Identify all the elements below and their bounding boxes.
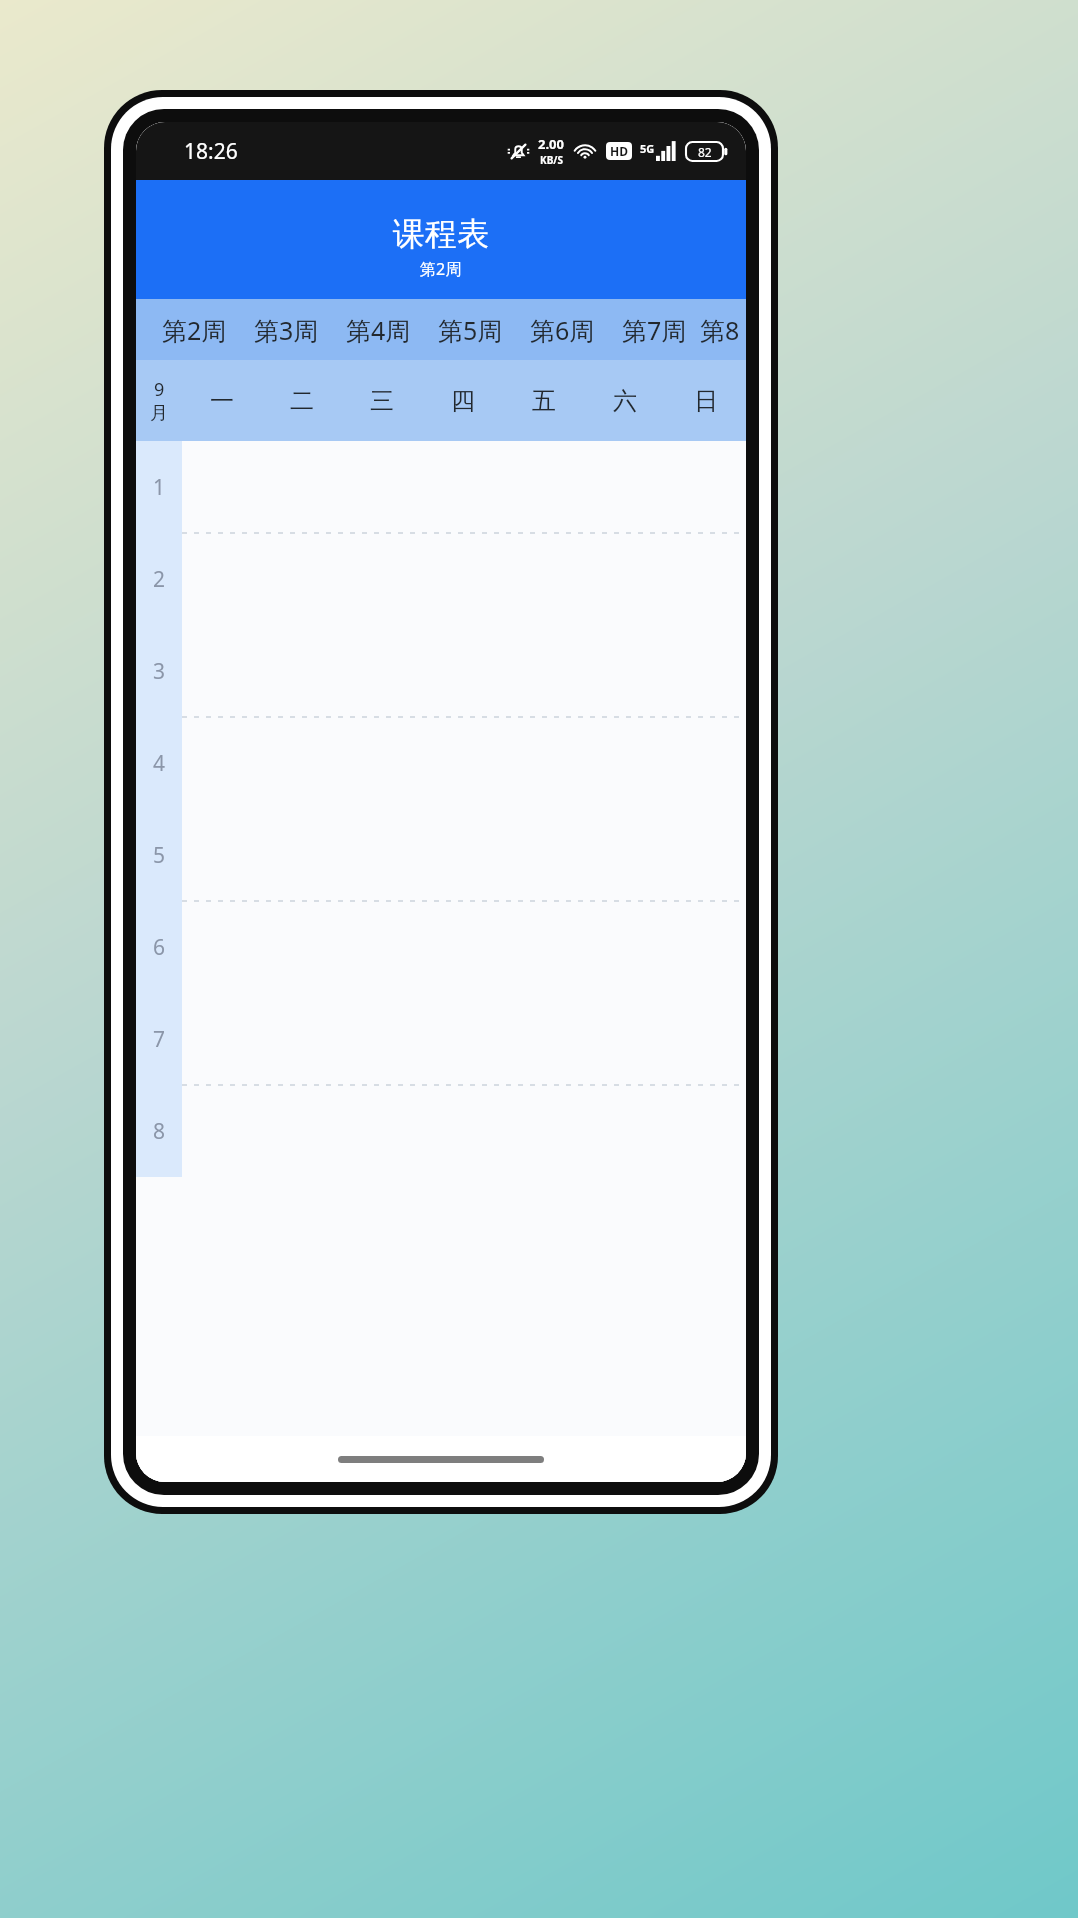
staticText: KB/S (540, 153, 563, 167)
staticText: 2.00 (538, 135, 564, 153)
staticText: 6 (153, 933, 166, 962)
button[interactable]: 第3周 (240, 299, 332, 360)
staticText: 第6周 (530, 313, 595, 347)
staticText: 4 (153, 749, 166, 778)
button[interactable]: Home (338, 1456, 544, 1463)
button[interactable]: 第4周 (332, 299, 424, 360)
staticText: 5G (640, 141, 655, 156)
button[interactable]: 2 (136, 533, 182, 625)
button[interactable]: 第2周 (148, 299, 240, 360)
staticText: 一 (210, 386, 234, 416)
staticText: 18:26 (184, 137, 238, 166)
staticText: HD (610, 143, 628, 159)
button[interactable]: 日 (665, 360, 746, 441)
button[interactable]: 五 (503, 360, 584, 441)
staticText: 5 (153, 841, 166, 870)
staticText: 第2周 (162, 313, 227, 347)
staticText: 月 (150, 402, 168, 425)
button[interactable]: 8 (136, 1085, 182, 1177)
button[interactable]: 第6周 (516, 299, 608, 360)
button[interactable]: 二 (262, 360, 342, 441)
button[interactable]: 4 (136, 717, 182, 809)
staticText: 7 (153, 1025, 166, 1054)
button[interactable]: 3 (136, 625, 182, 717)
staticText: 9 (154, 377, 165, 402)
button[interactable]: 六 (584, 360, 665, 441)
staticText: 三 (370, 386, 394, 416)
button[interactable]: 6 (136, 901, 182, 993)
staticText: 2 (153, 565, 166, 594)
staticText: 82 (698, 144, 712, 160)
staticText: 日 (694, 386, 718, 416)
button[interactable]: 三 (342, 360, 422, 441)
button[interactable]: 一 (182, 360, 262, 441)
staticText: 课程表 (393, 214, 489, 254)
button[interactable]: 5 (136, 809, 182, 901)
staticText: 1 (153, 473, 166, 502)
button[interactable]: 1 (136, 441, 182, 533)
button[interactable]: 第8周 (700, 299, 746, 360)
button[interactable]: 四 (422, 360, 503, 441)
staticText: 第2周 (420, 258, 462, 280)
button[interactable]: 7 (136, 993, 182, 1085)
button[interactable]: 第5周 (424, 299, 516, 360)
button[interactable]: 第7周 (608, 299, 700, 360)
